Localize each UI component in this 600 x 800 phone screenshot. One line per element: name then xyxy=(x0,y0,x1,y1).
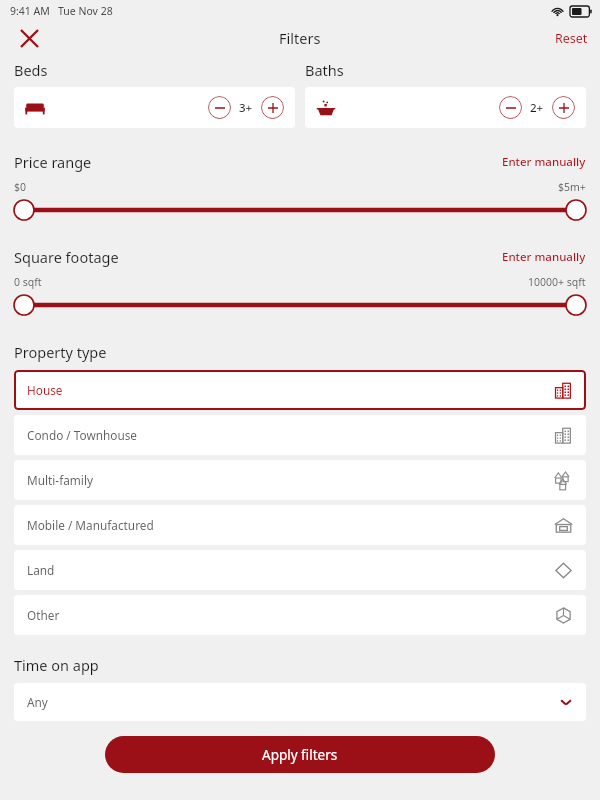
staticText: Condo / Townhouse xyxy=(27,427,138,443)
button[interactable]: Reset xyxy=(543,24,600,53)
staticText: Reset xyxy=(555,30,588,47)
button[interactable]: Square footage slider xyxy=(14,294,586,316)
staticText: Square footage xyxy=(14,247,119,267)
button[interactable]: Increase xyxy=(261,96,284,119)
staticText: Tue Nov 28 xyxy=(58,4,113,18)
button[interactable]: Condo / Townhouse xyxy=(14,415,586,455)
staticText: Other xyxy=(27,607,60,623)
staticText: Property type xyxy=(14,342,107,362)
staticText: Enter manually xyxy=(502,154,586,170)
staticText: 0 sqft xyxy=(14,275,42,289)
button[interactable]: Land xyxy=(14,550,586,590)
button[interactable]: Enter manually xyxy=(502,245,586,269)
staticText: Mobile / Manufactured xyxy=(27,517,154,533)
staticText: House xyxy=(27,382,63,398)
staticText: 2+ xyxy=(530,100,544,116)
staticText: 9:41 AM xyxy=(10,4,50,18)
button[interactable]: Decrease xyxy=(208,96,231,119)
staticText: 10000+ sqft xyxy=(528,275,586,289)
button[interactable]: Increase xyxy=(552,96,575,119)
staticText: Time on app xyxy=(14,655,99,675)
staticText: Baths xyxy=(305,60,344,80)
button[interactable]: Other xyxy=(14,595,586,635)
button[interactable]: Enter manually xyxy=(502,150,586,174)
button[interactable]: Multi-family xyxy=(14,460,586,500)
button[interactable]: Mobile / Manufactured xyxy=(14,505,586,545)
staticText: Price range xyxy=(14,152,92,172)
staticText: $5m+ xyxy=(558,180,586,194)
button[interactable]: Close xyxy=(12,22,46,54)
staticText: Beds xyxy=(14,60,48,80)
button[interactable]: House xyxy=(14,370,586,410)
staticText: Filters xyxy=(279,28,321,48)
staticText: Land xyxy=(27,562,55,578)
button[interactable]: Decrease xyxy=(499,96,522,119)
staticText: 3+ xyxy=(239,100,253,116)
button[interactable]: Any xyxy=(14,683,586,721)
staticText: $0 xyxy=(14,180,27,194)
staticText: Enter manually xyxy=(502,249,586,265)
button[interactable]: Price range slider xyxy=(14,199,586,221)
staticText: Multi-family xyxy=(27,472,93,488)
staticText: Apply filters xyxy=(262,746,338,764)
staticText: Any xyxy=(27,694,48,710)
button[interactable]: Apply filters xyxy=(105,736,495,773)
